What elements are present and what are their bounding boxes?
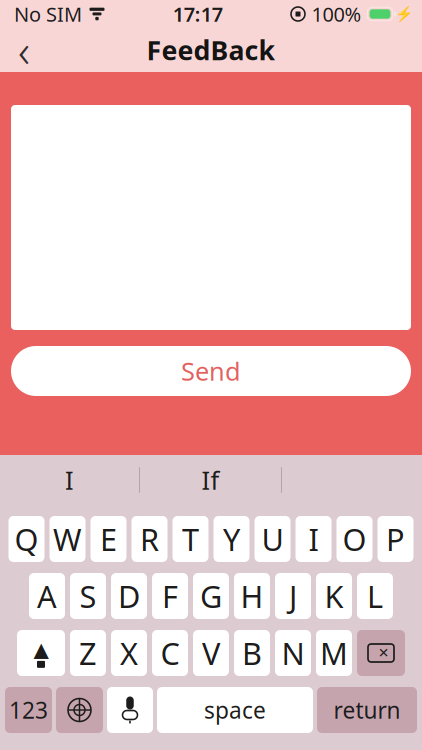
staticText: 17:17 — [173, 1, 223, 27]
staticText: B — [242, 633, 262, 673]
staticText: E — [100, 519, 117, 559]
button[interactable]: Z — [70, 630, 106, 676]
staticText: F — [162, 576, 178, 616]
button[interactable]: N — [275, 630, 311, 676]
staticText: W — [53, 519, 82, 559]
button[interactable]: I — [0, 455, 139, 505]
button[interactable]: Y — [213, 516, 249, 562]
staticText: Z — [79, 633, 97, 673]
staticText: M — [320, 633, 348, 673]
staticText: 100% — [311, 1, 361, 27]
staticText: No SIM — [14, 1, 82, 27]
button[interactable]: D — [111, 573, 147, 619]
button[interactable]: return — [317, 687, 417, 733]
button[interactable]: Dictation — [107, 687, 153, 733]
button[interactable]: F — [152, 573, 188, 619]
staticText: R — [140, 519, 159, 559]
button[interactable]: W — [49, 516, 85, 562]
staticText: J — [289, 576, 297, 616]
button[interactable]: Delete — [357, 630, 405, 676]
staticText: space — [204, 695, 266, 725]
button[interactable]: G — [193, 573, 229, 619]
button[interactable]: O — [336, 516, 372, 562]
staticText: ‹ — [18, 20, 30, 80]
staticText: I — [308, 519, 318, 559]
button[interactable]: 123 — [5, 687, 52, 733]
button[interactable]: J — [275, 573, 311, 619]
staticText: T — [182, 519, 199, 559]
button[interactable]: T — [172, 516, 208, 562]
staticText: If — [201, 463, 219, 497]
staticText: 123 — [9, 695, 48, 725]
button[interactable]: P — [377, 516, 413, 562]
staticText: D — [118, 576, 140, 616]
button[interactable]: E — [90, 516, 126, 562]
staticText: ✕ — [378, 645, 389, 660]
button[interactable]: R — [131, 516, 167, 562]
button[interactable]: K — [316, 573, 352, 619]
staticText: K — [324, 576, 343, 616]
staticText: U — [261, 519, 283, 559]
button[interactable]: Next keyboard — [56, 687, 103, 733]
button[interactable]: L — [357, 573, 393, 619]
staticText: H — [240, 576, 263, 616]
button[interactable]: M — [316, 630, 352, 676]
staticText: A — [37, 576, 57, 616]
button[interactable]: Send — [11, 346, 411, 396]
button[interactable]: A — [29, 573, 65, 619]
button[interactable]: C — [152, 630, 188, 676]
staticText: ▲ — [33, 638, 48, 661]
staticText: Y — [223, 519, 240, 559]
button[interactable]: If — [140, 455, 281, 505]
button[interactable]: X — [111, 630, 147, 676]
button[interactable]: Back — [0, 28, 48, 72]
button[interactable]: I — [295, 516, 331, 562]
staticText: Q — [14, 519, 38, 559]
button[interactable]: Q — [8, 516, 44, 562]
button[interactable]: U — [254, 516, 290, 562]
staticText: Send — [181, 354, 241, 388]
staticText: V — [202, 633, 220, 673]
button[interactable]: H — [234, 573, 270, 619]
button[interactable]: Shift — [17, 630, 65, 676]
staticText: O — [342, 519, 366, 559]
staticText: C — [160, 633, 179, 673]
staticText: G — [200, 576, 222, 616]
staticText: N — [281, 633, 304, 673]
staticText: I — [65, 463, 74, 497]
button[interactable]: S — [70, 573, 106, 619]
staticText: FeedBack — [146, 32, 275, 68]
button[interactable]: B — [234, 630, 270, 676]
staticText: X — [120, 633, 138, 673]
button[interactable]: V — [193, 630, 229, 676]
staticText: S — [79, 576, 96, 616]
staticText: ⚡ — [395, 6, 413, 22]
staticText: L — [367, 576, 383, 616]
staticText: P — [386, 519, 405, 559]
button[interactable]: space — [157, 687, 313, 733]
staticText: return — [333, 695, 400, 725]
